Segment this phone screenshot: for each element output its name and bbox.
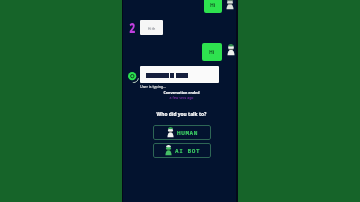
- staticText: Who did you talk to?: [125, 111, 238, 118]
- staticText: 2: [129, 18, 136, 36]
- staticText: Hi th: [148, 26, 156, 30]
- staticText: a few secs ago: [125, 95, 238, 100]
- staticText: User is typing...: [140, 84, 166, 89]
- button[interactable]: Hi: [202, 43, 222, 61]
- staticText: Conversation ended: [125, 90, 238, 95]
- other: WhatsApp: [128, 72, 137, 81]
- button[interactable]: Hi: [204, 0, 222, 13]
- staticText: Hi: [209, 49, 215, 56]
- button[interactable]: Hi th: [140, 20, 163, 35]
- staticText: AI BOT: [175, 147, 201, 155]
- button[interactable]: HUMAN: [153, 125, 211, 140]
- staticText: HUMAN: [177, 129, 199, 137]
- button[interactable]: AI BOT: [153, 143, 211, 158]
- staticText: Hi: [210, 2, 216, 9]
